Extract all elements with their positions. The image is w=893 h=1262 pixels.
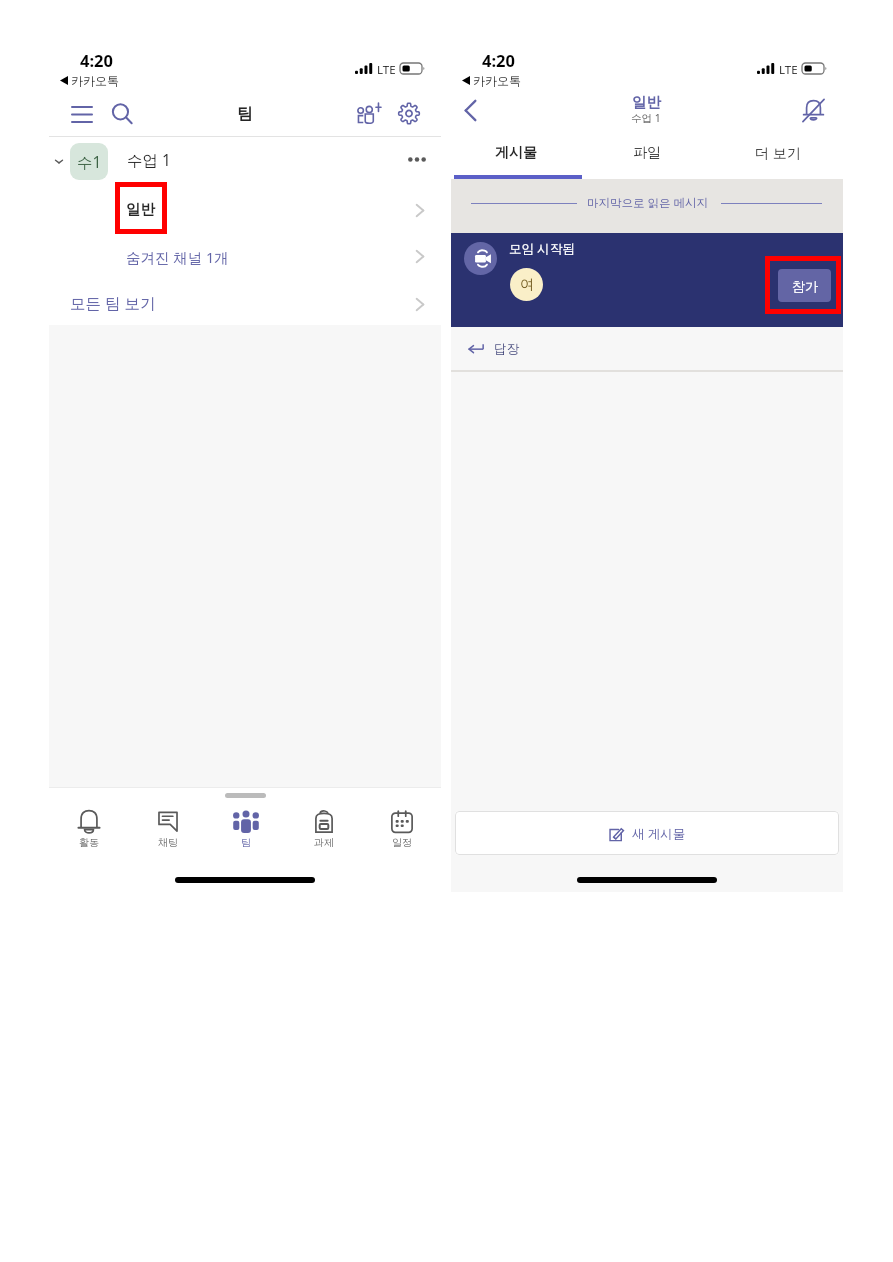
button[interactable]: Mute notifications [794,91,832,129]
button[interactable]: Search [104,96,140,132]
button[interactable]: Menu [63,96,101,132]
button[interactable]: 더 보기 [712,134,843,171]
button[interactable]: Back [451,91,489,129]
button[interactable]: 새 게시물 [455,811,839,855]
staticText: 더 보기 [755,143,801,162]
button[interactable]: 일반 [49,184,441,230]
staticText: 카카오톡 [71,73,119,88]
staticText: 수업 1 [127,149,171,170]
staticText: 모임 시작됨 [509,240,575,257]
button[interactable]: 팀 [207,810,285,849]
button[interactable]: 파일 [581,134,712,171]
button[interactable]: 답장 [451,327,843,367]
staticText: 숨겨진 채널 1개 [126,247,229,267]
staticText: LTE [377,62,396,78]
staticText: 답장 [494,341,519,357]
staticText: 파일 [633,144,661,162]
staticText: 활동 [79,836,99,849]
staticText: 카카오톡 [473,73,521,88]
staticText: 참가 [792,278,818,294]
staticText: 모든 팀 보기 [70,292,156,313]
staticText: 과제 [314,836,334,849]
staticText: 4:20 [80,49,113,71]
button[interactable]: Add member [350,94,388,132]
staticText: 마지막으로 읽은 메시지 [587,195,708,211]
staticText: 게시물 [495,144,537,162]
staticText: 일반 [632,93,661,111]
button[interactable]: 게시물 [451,134,581,171]
button[interactable]: 활동 [49,810,128,849]
staticText: 여 [520,276,534,294]
staticText: 일반 [126,200,155,218]
button[interactable]: 일정 [363,810,441,849]
button[interactable]: 채팅 [128,810,207,849]
staticText: 팀 [237,104,253,124]
staticText: 일정 [392,836,412,849]
button[interactable]: 모든 팀 보기 [49,278,441,323]
staticText: 4:20 [482,49,515,71]
staticText: 수업 1 [631,111,661,125]
staticText: 새 게시물 [632,825,686,842]
staticText: 채팅 [158,836,178,849]
button[interactable]: 과제 [285,810,363,849]
button[interactable]: 숨겨진 채널 1개 [49,232,441,276]
staticText: 팀 [241,836,251,849]
staticText: 수1 [77,151,102,172]
staticText: LTE [779,62,798,78]
button[interactable]: 참가 [778,269,831,302]
button[interactable]: Settings [390,94,428,132]
button[interactable]: 수1 [49,137,441,181]
button[interactable]: More options [387,141,431,177]
